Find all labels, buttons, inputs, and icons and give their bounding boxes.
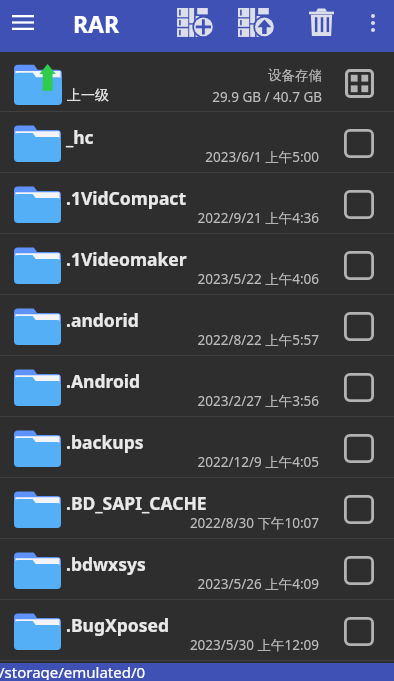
staticText: .backups — [66, 430, 144, 454]
button[interactable]: Menu — [2, 2, 43, 42]
staticText: 2023/5/30 上午12:09 — [169, 636, 319, 654]
button[interactable] — [0, 112, 394, 172]
staticText: 上一级 — [67, 87, 109, 105]
staticText: .BugXposed — [66, 613, 170, 637]
button[interactable] — [0, 356, 394, 416]
staticText: .BD_SAPI_CACHE — [66, 491, 207, 515]
staticText: 2023/5/22 上午4:06 — [169, 270, 319, 288]
staticText: .1Videomaker — [66, 247, 187, 271]
staticText: 2023/6/1 上午5:00 — [169, 148, 319, 166]
button[interactable]: Select — [336, 421, 381, 476]
staticText: .Android — [66, 369, 141, 393]
staticText: 2022/12/9 上午4:05 — [169, 453, 319, 471]
button[interactable]: Select — [336, 543, 381, 598]
button[interactable] — [0, 173, 394, 233]
button[interactable] — [0, 539, 394, 599]
button[interactable] — [0, 295, 394, 355]
staticText: _hc — [66, 125, 94, 149]
button[interactable]: Select — [336, 482, 381, 537]
button[interactable]: Extract archive — [230, 0, 282, 45]
staticText: 2022/8/30 下午10:07 — [169, 514, 319, 532]
staticText: .andorid — [66, 308, 139, 332]
button[interactable] — [0, 52, 394, 111]
button[interactable]: Add to archive — [169, 0, 221, 45]
button[interactable] — [0, 478, 394, 538]
button[interactable] — [0, 600, 394, 660]
staticText: 2023/2/27 上午3:56 — [169, 392, 319, 410]
staticText: /storage/emulated/0 — [0, 662, 146, 680]
button[interactable]: Delete — [299, 0, 343, 46]
button[interactable]: More options — [355, 1, 391, 45]
staticText: RAR — [73, 8, 120, 39]
staticText: .1VidCompact — [66, 186, 186, 210]
staticText: 2023/5/26 上午4:09 — [169, 575, 319, 593]
staticText: 2022/9/21 上午4:36 — [169, 209, 319, 227]
button[interactable]: Select — [336, 360, 381, 415]
button[interactable] — [0, 417, 394, 477]
staticText: 2022/8/22 上午5:57 — [169, 331, 319, 349]
staticText: 29.9 GB / 40.7 GB — [192, 88, 322, 106]
staticText: .bdwxsys — [66, 552, 146, 576]
button[interactable]: Select — [336, 299, 381, 354]
button[interactable]: Select — [336, 238, 381, 293]
button[interactable] — [0, 234, 394, 294]
button[interactable]: Grid view — [335, 61, 383, 106]
button[interactable]: Select — [336, 604, 381, 659]
button[interactable]: Select — [336, 116, 381, 171]
button[interactable]: Select — [336, 177, 381, 232]
staticText: 设备存储 — [192, 67, 322, 84]
